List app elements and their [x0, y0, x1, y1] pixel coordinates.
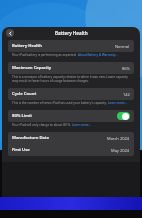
staticText: 80% Limit — [12, 113, 32, 119]
button[interactable]: About Battery & Warranty... — [78, 53, 118, 57]
staticText: March 2024 — [107, 136, 130, 141]
staticText: Your iPad will only charge to about 80 %… — [12, 123, 72, 127]
staticText: Normal — [115, 44, 130, 49]
staticText: First Use — [12, 147, 30, 153]
button[interactable]: Back — [6, 29, 14, 37]
staticText: This is a measure of battery capacity re… — [12, 75, 130, 83]
staticText: This is the number of times iPad has use… — [12, 101, 108, 105]
button[interactable]: 80% Limit toggle — [117, 112, 130, 120]
button[interactable]: Maximum Capacity — [8, 62, 134, 74]
staticText: Battery Health — [55, 30, 88, 36]
staticText: 86% — [122, 66, 130, 71]
button[interactable]: 80% Limit — [8, 110, 134, 122]
staticText: 142 — [123, 92, 130, 97]
staticText: Manufacture Date — [12, 135, 50, 141]
button[interactable]: Battery Health — [8, 40, 134, 52]
button[interactable]: First Use — [8, 144, 134, 156]
staticText: May 2024 — [111, 148, 130, 153]
button[interactable]: Manufacture Date — [8, 132, 134, 144]
staticText: Your iPad battery is performing as expec… — [12, 53, 78, 57]
staticText: Battery Health — [12, 43, 42, 49]
button[interactable]: Learn more... — [108, 101, 128, 105]
button[interactable]: Cycle Count — [8, 88, 134, 100]
button[interactable]: Learn more... — [72, 123, 92, 127]
staticText: Maximum Capacity — [12, 65, 52, 71]
staticText: Cycle Count — [12, 91, 37, 97]
